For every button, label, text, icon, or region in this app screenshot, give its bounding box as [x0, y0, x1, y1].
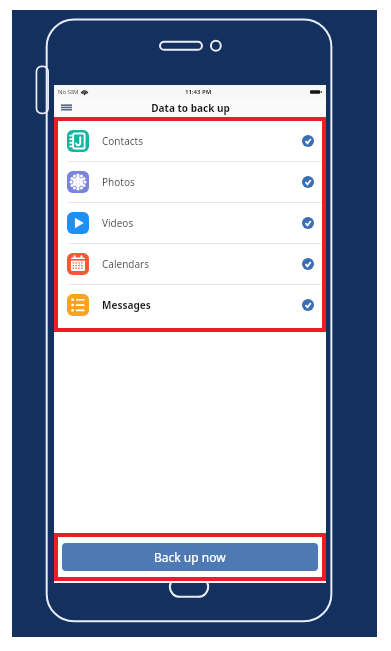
button[interactable]: Menu	[59, 101, 73, 115]
staticText: 11:43 PM	[185, 88, 212, 96]
staticText: Photos	[102, 175, 135, 189]
button[interactable]: Back up now	[62, 543, 318, 571]
staticText: Messages	[102, 298, 151, 312]
button[interactable]: Calendars	[58, 244, 322, 284]
button[interactable]: Messages	[58, 285, 322, 325]
button[interactable]: Photos	[58, 162, 322, 202]
staticText: Data to back up	[151, 101, 230, 115]
staticText: Videos	[102, 216, 134, 230]
staticText: Calendars	[102, 257, 150, 271]
staticText: Back up now	[154, 549, 226, 565]
button[interactable]: Videos	[58, 203, 322, 243]
staticText: Contacts	[102, 134, 143, 148]
button[interactable]: Contacts	[58, 121, 322, 161]
staticText: No SIM	[58, 88, 79, 96]
